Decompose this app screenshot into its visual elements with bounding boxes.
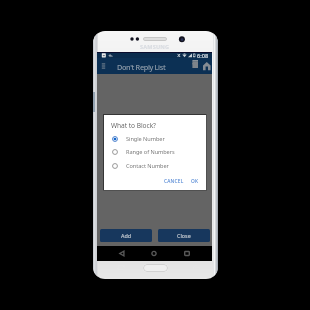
staticText: Don't Reply List <box>117 62 166 72</box>
button[interactable]: OK <box>191 178 199 185</box>
staticText: SAMSUNG <box>140 43 170 51</box>
button[interactable]: Single Number <box>104 132 206 145</box>
staticText: What to Block? <box>111 121 156 130</box>
button[interactable]: Close <box>158 229 210 242</box>
button[interactable]: CANCEL <box>164 178 184 185</box>
button[interactable]: Range of Numbers <box>104 145 206 158</box>
button[interactable]: Contact Number <box>104 159 206 172</box>
staticText: Close <box>177 232 191 239</box>
button[interactable]: Home <box>147 246 161 261</box>
staticText: Add <box>121 232 132 239</box>
button[interactable]: Home <box>202 58 211 74</box>
staticText: Single Number <box>126 135 165 143</box>
staticText: 6:08 <box>197 52 209 58</box>
button[interactable]: Add <box>100 229 152 242</box>
button[interactable]: Back <box>115 246 129 261</box>
staticText: Range of Numbers <box>126 148 175 156</box>
button[interactable]: Menu <box>99 58 108 74</box>
staticText: Contact Number <box>126 162 169 170</box>
button[interactable]: Delete <box>191 58 200 74</box>
button[interactable]: Recents <box>180 246 194 261</box>
button[interactable]: Home <box>143 264 168 272</box>
